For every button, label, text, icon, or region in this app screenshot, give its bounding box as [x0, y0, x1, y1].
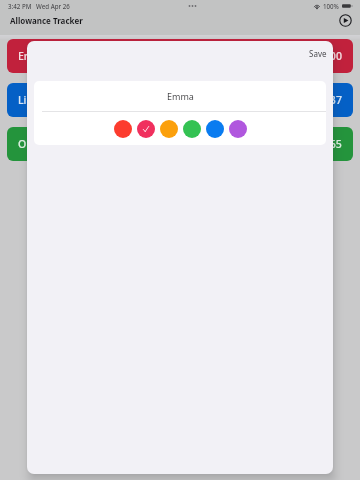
staticText: Emma: [18, 49, 50, 63]
staticText: $8.65: [315, 137, 342, 151]
button[interactable]: Save: [304, 45, 332, 62]
staticText: Olivia: [18, 137, 47, 151]
staticText: Liam: [18, 93, 43, 107]
staticText: Allowance Tracker: [10, 15, 83, 26]
button[interactable]: Emma: [7, 39, 353, 73]
staticText: Emma: [167, 90, 194, 102]
button[interactable]: Liam: [7, 83, 353, 117]
button[interactable]: More options: [339, 14, 352, 27]
button[interactable]: [137, 120, 155, 138]
staticText: Wed Apr 26: [36, 2, 70, 10]
button[interactable]: [206, 120, 224, 138]
staticText: 3:42 PM: [8, 2, 32, 10]
staticText: $15.37: [309, 93, 342, 107]
staticText: $20.00: [309, 49, 342, 63]
button[interactable]: [114, 120, 132, 138]
button[interactable]: [160, 120, 178, 138]
staticText: Save: [309, 48, 327, 59]
button[interactable]: [183, 120, 201, 138]
staticText: 100%: [323, 2, 339, 10]
button[interactable]: Olivia: [7, 127, 353, 161]
button[interactable]: [229, 120, 247, 138]
